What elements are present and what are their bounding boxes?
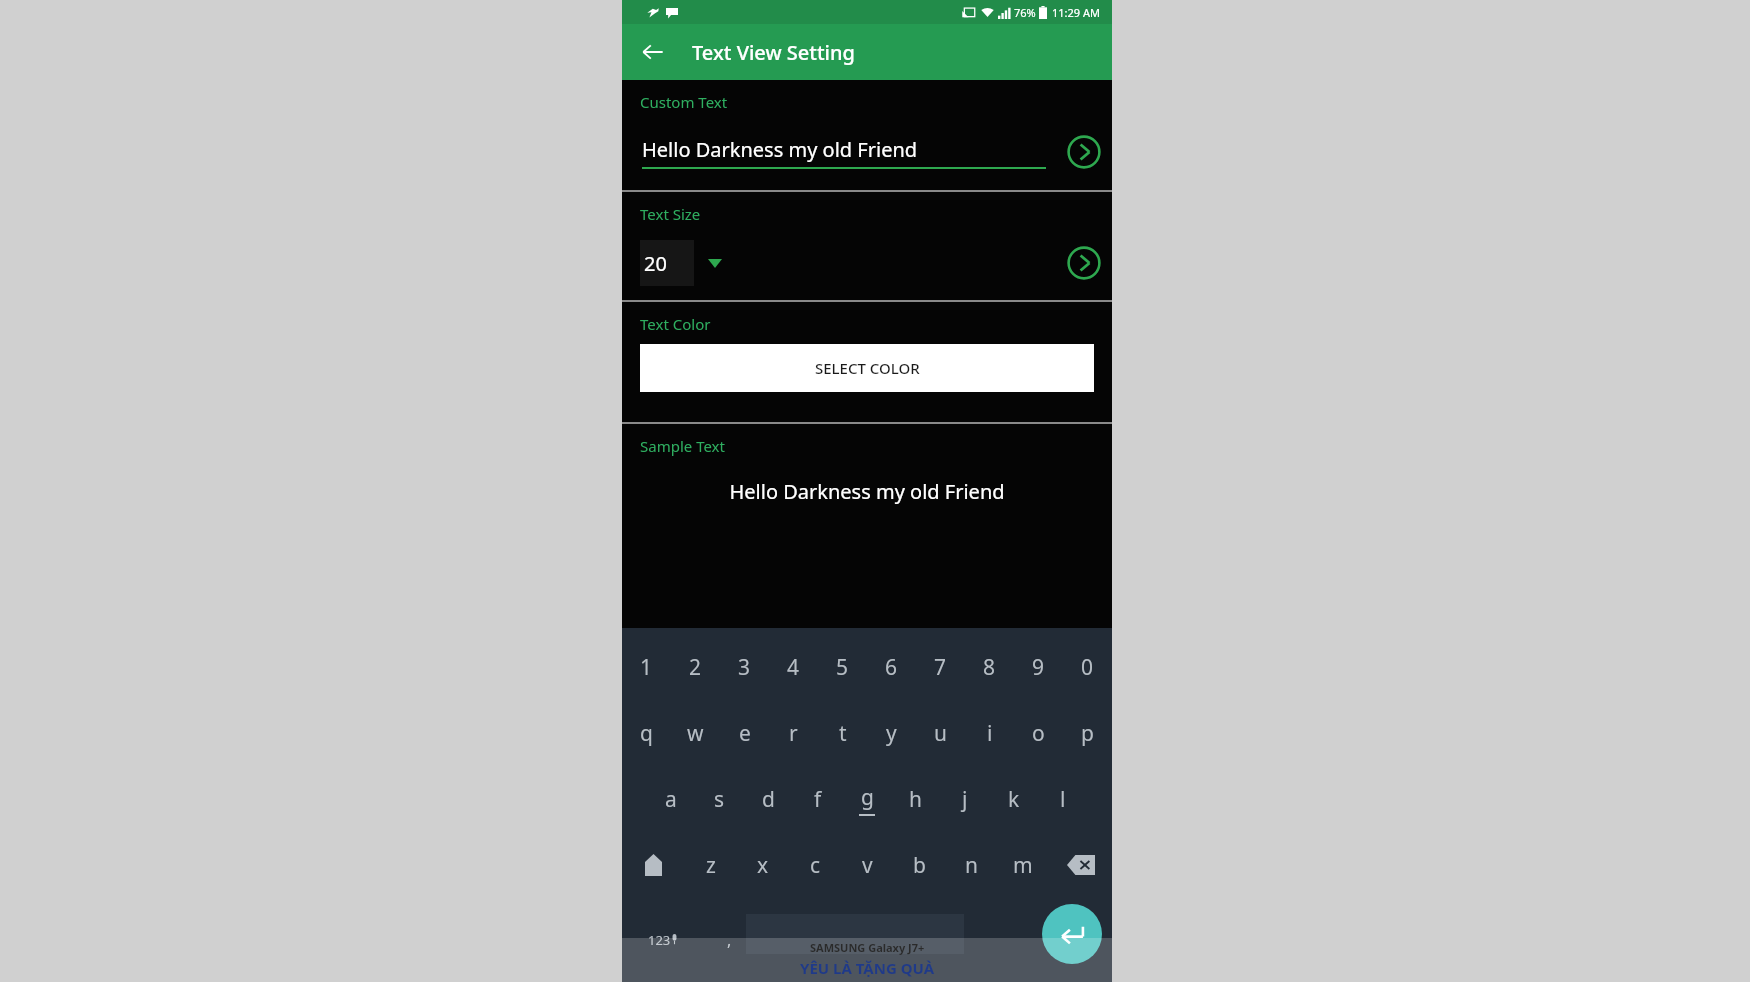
button[interactable]: 2 [671,634,720,700]
staticText: k [1008,785,1020,814]
button[interactable]: p [1063,700,1112,766]
staticText: 20 [644,250,667,277]
button[interactable]: t [818,700,867,766]
staticText: 6 [885,653,898,682]
staticText: YÊU LÀ TẶNG QUÀ [800,958,935,978]
button[interactable]: 20 [640,240,694,286]
button[interactable]: o [1014,700,1063,766]
staticText: x [757,851,769,880]
staticText: 4 [787,653,800,682]
button[interactable]: 7 [916,634,965,700]
button[interactable]: 8 [965,634,1014,700]
staticText: 2 [689,653,702,682]
staticText: g [861,783,874,812]
button[interactable]: b [893,832,945,898]
button[interactable]: m [997,832,1049,898]
button[interactable]: 9 [1014,634,1063,700]
staticText: 76% [1014,5,1036,20]
staticText: q [640,719,653,748]
button[interactable]: d [744,766,793,832]
button[interactable]: h [891,766,940,832]
staticText: 9 [1032,653,1045,682]
staticText: e [739,719,751,748]
staticText: 123 [648,931,671,949]
staticText: 3 [738,653,751,682]
button[interactable]: Back [630,29,676,75]
staticText: z [706,851,716,880]
staticText: u [934,719,947,748]
button[interactable]: g [842,766,891,832]
button[interactable]: Backspace [1049,832,1112,898]
staticText: 5 [836,653,849,682]
button[interactable]: 4 [769,634,818,700]
button[interactable]: e [720,700,769,766]
staticText: Sample Text [640,436,725,456]
staticText: n [965,851,978,880]
staticText: Text Size [640,204,701,224]
button[interactable]: k [989,766,1038,832]
staticText: c [810,851,821,880]
staticText: , [727,929,732,951]
staticText: Hello Darkness my old Friend [642,136,918,163]
staticText: h [909,785,922,814]
staticText: o [1032,719,1045,748]
staticText: l [1060,785,1066,814]
staticText: y [886,719,897,748]
staticText: 8 [983,653,996,682]
staticText: t [839,719,847,748]
staticText: 7 [934,653,947,682]
button[interactable]: n [945,832,997,898]
button[interactable]: YÊU LÀ TẶNG QUÀ [622,938,1112,982]
staticText: Text Color [640,314,711,334]
staticText: a [665,785,677,814]
staticText: j [962,785,968,814]
button[interactable]: w [671,700,720,766]
staticText: m [1013,851,1033,880]
button[interactable]: 3 [720,634,769,700]
staticText: Hello Darkness my old Friend [622,478,1112,505]
button[interactable]: z [685,832,737,898]
staticText: 0 [1081,653,1094,682]
button[interactable] [756,898,1024,982]
staticText: b [913,851,926,880]
staticText: i [987,719,993,748]
button[interactable]: s [695,766,744,832]
staticText: f [814,785,822,814]
button[interactable]: i [965,700,1014,766]
button[interactable]: v [841,832,893,898]
button[interactable]: 1 [622,634,671,700]
staticText: v [862,851,873,880]
button[interactable]: Apply [1062,130,1106,174]
button[interactable]: 6 [867,634,916,700]
button[interactable]: c [789,832,841,898]
button[interactable]: q [622,700,671,766]
button[interactable]: 0 [1063,634,1112,700]
button[interactable]: u [916,700,965,766]
button[interactable] [1024,898,1112,982]
button[interactable]: r [769,700,818,766]
staticText: w [687,719,704,748]
button[interactable]: SELECT COLOR [640,344,1094,392]
staticText: SELECT COLOR [815,358,920,378]
button[interactable]: x [737,832,789,898]
staticText: 1 [640,653,653,682]
button[interactable]: 5 [818,634,867,700]
button[interactable]: Apply [1062,241,1106,285]
staticText: p [1081,719,1094,748]
button[interactable]: a [646,766,695,832]
button[interactable]: 123 [622,898,703,982]
button[interactable]: Shift [622,832,685,898]
button[interactable]: y [867,700,916,766]
button[interactable]: , [703,898,756,982]
button[interactable]: j [940,766,989,832]
button[interactable]: f [793,766,842,832]
staticText: r [789,719,798,748]
staticText: d [762,785,775,814]
staticText: 11:29 AM [1052,5,1100,20]
staticText: Custom Text [640,92,728,112]
button[interactable]: Enter [1042,904,1102,964]
staticText: SAMSUNG Galaxy J7+ [810,940,925,955]
staticText: s [714,785,725,814]
staticText: Text View Setting [692,39,855,66]
button[interactable]: l [1038,766,1087,832]
